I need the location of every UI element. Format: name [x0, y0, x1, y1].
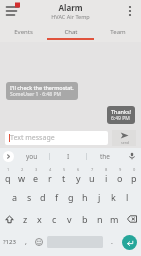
button[interactable]: d: [36, 186, 50, 208]
staticText: f: [55, 191, 59, 203]
button[interactable]: 0: [127, 164, 141, 186]
button[interactable]: v: [62, 208, 77, 230]
button[interactable]: I: [50, 148, 86, 164]
button[interactable]: Events: [0, 22, 47, 42]
staticText: Chat: [64, 28, 78, 36]
staticText: 8: [105, 167, 108, 172]
button[interactable]: l: [120, 186, 134, 208]
staticText: Team: [110, 28, 126, 36]
staticText: h: [82, 191, 88, 203]
staticText: g: [68, 191, 74, 203]
staticText: ,: [25, 237, 27, 247]
button[interactable]: z: [18, 208, 32, 230]
button[interactable]: j: [92, 186, 106, 208]
button[interactable]: b: [77, 208, 92, 230]
staticText: b: [82, 213, 88, 225]
staticText: Thanks!: [111, 108, 131, 115]
staticText: 6: [77, 167, 80, 172]
button[interactable]: 5: [57, 164, 71, 186]
button[interactable]: f: [50, 186, 64, 208]
button[interactable]: 2: [15, 164, 29, 186]
button[interactable]: x: [32, 208, 47, 230]
staticText: z: [23, 213, 28, 225]
button[interactable]: I'll check the thermostat.: [6, 82, 78, 100]
staticText: m: [110, 213, 119, 225]
button[interactable]: Emoji: [32, 230, 45, 254]
staticText: u: [89, 172, 95, 184]
staticText: d: [40, 191, 46, 203]
button[interactable]: 4: [43, 164, 57, 186]
staticText: y: [76, 172, 81, 184]
button[interactable]: Voice input: [123, 148, 141, 164]
staticText: send: [121, 140, 129, 145]
button[interactable]: .: [105, 230, 118, 254]
button[interactable]: 6: [71, 164, 85, 186]
staticText: 5: [63, 167, 66, 172]
button[interactable]: n: [92, 208, 107, 230]
button[interactable]: Shift: [0, 208, 18, 230]
button[interactable]: Team: [94, 22, 141, 42]
button[interactable]: Text message: [5, 131, 108, 145]
staticText: a: [12, 191, 18, 203]
button[interactable]: 9: [113, 164, 127, 186]
staticText: Text message: [10, 133, 55, 143]
staticText: l: [126, 191, 129, 203]
staticText: 4: [49, 167, 52, 172]
staticText: 9: [119, 167, 122, 172]
button[interactable]: Expand suggestions: [3, 151, 14, 162]
button[interactable]: Open navigation menu: [5, 3, 21, 19]
button[interactable]: Send: [112, 130, 136, 146]
button[interactable]: 3: [29, 164, 43, 186]
staticText: s: [27, 191, 32, 203]
staticText: e: [33, 172, 39, 184]
staticText: w: [18, 172, 26, 184]
button[interactable]: h: [78, 186, 92, 208]
staticText: HVAC Air Temp: [51, 13, 90, 20]
button[interactable]: 8: [99, 164, 113, 186]
button[interactable]: g: [64, 186, 78, 208]
staticText: j: [98, 191, 101, 203]
staticText: 2: [21, 167, 24, 172]
button[interactable]: m: [107, 208, 122, 230]
staticText: .: [111, 237, 113, 247]
staticText: v: [67, 213, 72, 225]
button[interactable]: c: [47, 208, 62, 230]
staticText: 0: [133, 167, 136, 172]
staticText: p: [131, 172, 137, 184]
button[interactable]: a: [7, 186, 22, 208]
staticText: SomeUser 1 · 6:48 PM: [10, 91, 62, 98]
button[interactable]: Backspace: [122, 208, 141, 230]
staticText: x: [37, 213, 42, 225]
staticText: the: [100, 152, 111, 161]
staticText: o: [117, 172, 123, 184]
staticText: I: [67, 152, 70, 161]
staticText: Alarm: [58, 2, 83, 13]
button[interactable]: 1: [0, 164, 15, 186]
staticText: n: [97, 213, 103, 225]
staticText: c: [52, 213, 57, 225]
button[interactable]: s: [22, 186, 36, 208]
staticText: 7: [91, 167, 94, 172]
staticText: ?123: [3, 238, 16, 246]
staticText: q: [5, 172, 11, 184]
staticText: 1: [7, 167, 10, 172]
button[interactable]: Enter: [118, 230, 141, 254]
button[interactable]: Chat: [47, 22, 94, 42]
button[interactable]: 7: [85, 164, 99, 186]
staticText: 3: [35, 167, 38, 172]
button[interactable]: Thanks!: [107, 106, 135, 124]
button[interactable]: k: [106, 186, 120, 208]
button[interactable]: you: [14, 148, 49, 164]
button[interactable]: ?123: [0, 230, 19, 254]
staticText: you: [26, 152, 38, 161]
staticText: 6:49 PM: [111, 115, 130, 122]
staticText: k: [111, 191, 116, 203]
staticText: t: [62, 172, 66, 184]
staticText: Events: [14, 28, 33, 36]
staticText: I'll check the thermostat.: [10, 84, 74, 91]
button[interactable]: More options: [123, 4, 137, 18]
staticText: r: [48, 172, 52, 184]
button[interactable]: ,: [19, 230, 32, 254]
button[interactable]: the: [87, 148, 123, 164]
